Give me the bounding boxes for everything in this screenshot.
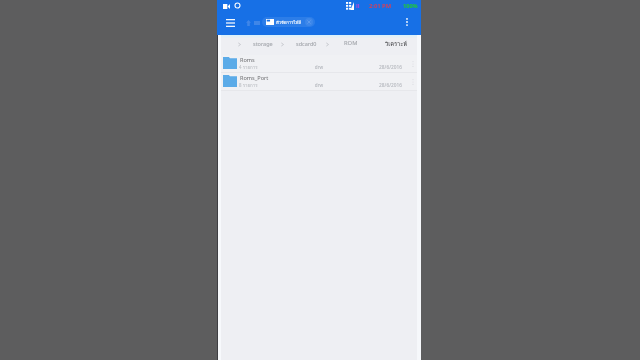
button[interactable]: Storage [251,16,262,27]
staticText: วิเคราะห์ [385,39,407,48]
button[interactable]: storage [250,33,276,53]
staticText: drw [309,82,329,88]
staticText: ll [356,2,360,10]
staticText: drw [309,64,329,70]
button[interactable]: Path separator [235,35,244,55]
button[interactable]: More options [401,15,414,28]
button[interactable]: Menu [221,14,240,33]
button[interactable]: Path separator [278,35,287,55]
button[interactable]: ROM [341,33,361,53]
staticText: storage [253,40,273,47]
button[interactable]: Roms [217,55,421,72]
button[interactable]: Home [242,16,255,29]
button[interactable]: sdcard0 [293,33,320,53]
staticText: Roms [240,56,255,64]
button[interactable]: ตัวจัดการไฟล์ [262,17,315,27]
staticText: 28/6/2016 [375,82,406,89]
staticText: 2:01 PM [369,2,392,10]
staticText: sdcard0 [296,40,317,47]
staticText: 8 รายการ [239,82,258,89]
staticText: ตัวจัดการไฟล์ [276,19,302,26]
button[interactable]: Path separator [323,35,332,55]
staticText: 100% [403,2,418,10]
staticText: Roms_Port [240,74,269,82]
button[interactable]: วิเคราะห์ [378,33,413,53]
staticText: 4 รายการ [239,64,258,71]
button[interactable]: Roms_Port [217,73,421,90]
staticText: ROM [344,39,358,47]
staticText: 28/6/2016 [375,64,406,71]
